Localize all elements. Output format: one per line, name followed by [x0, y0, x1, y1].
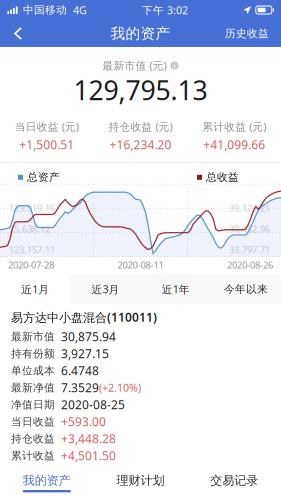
staticText: 近1月 — [21, 282, 49, 296]
staticText: 历史收益 — [225, 27, 269, 40]
staticText: 当日收益 — [11, 415, 55, 428]
staticText: 4G — [73, 3, 87, 17]
staticText: +4,501.50 — [61, 448, 116, 464]
staticText: 3,927.15 — [61, 346, 109, 362]
button[interactable]: 返回 — [0, 21, 34, 46]
staticText: 持有份额 — [11, 347, 55, 360]
staticText: 我的资产 — [110, 24, 170, 42]
staticText: 持仓收益 — [11, 432, 55, 445]
staticText: 2020-07-28 — [8, 259, 54, 271]
staticText: 我的资产 — [23, 473, 71, 488]
button[interactable]: 理财计划 — [94, 467, 187, 500]
staticText: 总资产 — [27, 171, 60, 184]
staticText: 2020-08-11 — [117, 259, 163, 271]
button[interactable]: 今年以来 — [211, 274, 281, 304]
staticText: 30,875.94 — [61, 329, 116, 345]
staticText: 中国移动 — [23, 3, 67, 16]
staticText: 123,519.16 — [9, 202, 55, 214]
staticText: 2020-08-26 — [227, 259, 273, 271]
staticText: 理财计划 — [116, 473, 164, 488]
staticText: 最新净值 — [11, 381, 55, 394]
staticText: 累计收益 — [11, 449, 55, 462]
staticText: 2020-08-25 — [61, 397, 125, 413]
staticText: 近3月 — [91, 282, 119, 296]
staticText: +1,500.51 — [19, 136, 74, 152]
staticText: +593.00 — [61, 414, 106, 430]
staticText: +3,448.28 — [61, 431, 116, 447]
staticText: 129,795.13 — [73, 72, 207, 108]
staticText: 易方达中小盘混合(110011) — [11, 309, 157, 325]
staticText: +41,099.66 — [203, 136, 265, 152]
staticText: 当日收益 (元) — [15, 119, 79, 134]
button[interactable]: 我的资产 — [0, 467, 94, 500]
staticText: 总收益 — [206, 171, 239, 184]
staticText: 39,126.21 — [229, 202, 270, 214]
staticText: (+2.10%) — [99, 381, 141, 395]
button[interactable]: 近1年 — [140, 274, 211, 304]
staticText: 最新市值 (元) — [102, 58, 166, 73]
button[interactable]: 历史收益 — [215, 21, 281, 46]
staticText: 净值日期 — [11, 398, 55, 411]
staticText: 交易记录 — [210, 473, 258, 488]
button[interactable]: 交易记录 — [187, 467, 281, 500]
staticText: 123,157.11 — [9, 243, 55, 256]
staticText: 33,797.71 — [229, 243, 270, 256]
staticText: 单位成本 — [11, 364, 55, 377]
staticText: 7.3529 — [61, 380, 99, 396]
staticText: 30,452.96 — [229, 223, 270, 235]
button[interactable]: 近3月 — [70, 274, 140, 304]
staticText: 累计收益 (元) — [202, 119, 266, 134]
staticText: 最新市值 — [11, 330, 55, 343]
staticText: 下午 3:02 — [142, 3, 188, 17]
staticText: +16,234.20 — [109, 136, 171, 152]
staticText: 25,638.12 — [9, 223, 50, 235]
staticText: 今年以来 — [224, 283, 268, 296]
staticText: 近1年 — [162, 282, 190, 296]
button[interactable]: 近1月 — [0, 274, 70, 304]
staticText: 持仓收益 (元) — [108, 119, 172, 134]
staticText: 6.4748 — [61, 363, 99, 379]
